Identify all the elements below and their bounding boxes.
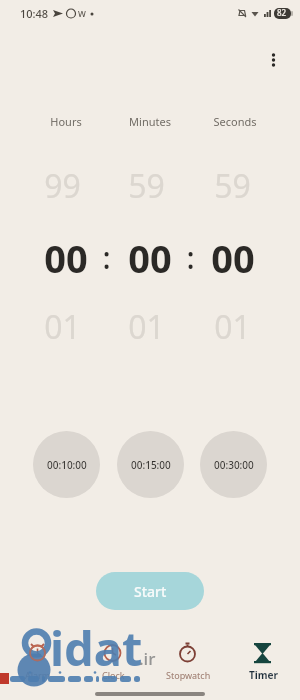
button[interactable] xyxy=(225,634,300,690)
staticText: 01 xyxy=(44,305,81,349)
staticText: w xyxy=(78,6,86,20)
staticText: : xyxy=(102,237,111,278)
button[interactable] xyxy=(0,634,75,690)
staticText: 00 xyxy=(128,232,172,284)
button[interactable] xyxy=(150,634,225,690)
staticText: 01 xyxy=(214,305,251,349)
button[interactable]: 00:10:00 xyxy=(33,431,100,498)
staticText: Minutes xyxy=(129,114,171,129)
staticText: .ir xyxy=(139,647,156,670)
staticText: 00 xyxy=(44,232,88,284)
staticText: 00:15:00 xyxy=(131,458,171,472)
button[interactable] xyxy=(75,634,150,690)
staticText: Start xyxy=(134,582,167,601)
staticText: idat xyxy=(50,616,143,680)
button[interactable] xyxy=(258,45,288,75)
staticText: 59 xyxy=(128,164,165,208)
staticText: 59 xyxy=(214,164,251,208)
button[interactable]: 00:15:00 xyxy=(117,431,184,498)
button[interactable]: 00:30:00 xyxy=(200,431,267,498)
staticText: 99 xyxy=(44,164,81,208)
staticText: Clock xyxy=(102,669,125,681)
staticText: : xyxy=(186,237,195,278)
staticText: Hours xyxy=(50,114,82,129)
staticText: Alarm xyxy=(25,669,51,681)
staticText: 82 xyxy=(277,7,287,18)
staticText: 00:10:00 xyxy=(47,458,87,472)
staticText: 00:30:00 xyxy=(214,458,254,472)
button[interactable]: Start xyxy=(96,572,204,610)
staticText: 10:48 xyxy=(20,6,49,21)
staticText: 00 xyxy=(211,232,255,284)
staticText: Stopwatch xyxy=(166,669,211,681)
staticText: 01 xyxy=(128,305,165,349)
staticText: Timer xyxy=(249,668,278,682)
staticText: Seconds xyxy=(213,114,257,129)
